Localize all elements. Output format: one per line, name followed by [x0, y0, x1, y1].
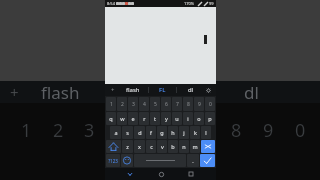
staticText: 7: [176, 101, 179, 108]
staticText: 2: [121, 101, 124, 108]
staticText: n: [182, 143, 186, 150]
staticText: g: [160, 129, 164, 136]
button[interactable]: v: [157, 140, 167, 153]
staticText: .: [192, 157, 194, 164]
button[interactable]: Home: [155, 168, 167, 180]
button[interactable]: .: [187, 154, 199, 167]
staticText: q: [109, 115, 113, 122]
staticText: +: [111, 86, 115, 94]
button[interactable]: b: [168, 140, 178, 153]
button[interactable]: s: [122, 126, 133, 139]
staticText: 1: [110, 101, 113, 108]
staticText: +: [10, 82, 19, 102]
button[interactable]: n: [179, 140, 189, 153]
button[interactable]: 1: [106, 97, 116, 111]
button[interactable]: 9: [194, 97, 204, 111]
button[interactable]: 5: [150, 97, 160, 111]
button[interactable]: l: [201, 126, 211, 139]
staticText: e: [131, 115, 135, 122]
staticText: 170%: [184, 1, 195, 6]
button[interactable]: g: [157, 126, 167, 139]
staticText: x: [138, 143, 141, 150]
staticText: flash: [41, 81, 80, 103]
button[interactable]: Space: [134, 154, 186, 167]
button[interactable]: h: [168, 126, 178, 139]
staticText: 5: [154, 101, 157, 108]
staticText: 6: [165, 101, 168, 108]
staticText: 99: [209, 1, 214, 6]
staticText: 3: [84, 118, 95, 143]
staticText: o: [197, 115, 201, 122]
staticText: 8:54: [107, 1, 115, 6]
button[interactable]: 7: [172, 97, 182, 111]
staticText: dl: [244, 81, 259, 103]
button[interactable]: 4: [139, 97, 149, 111]
staticText: 0: [295, 118, 306, 143]
button[interactable]: x: [134, 140, 145, 153]
staticText: flash: [126, 86, 140, 94]
button[interactable]: Emoji: [121, 154, 133, 167]
staticText: k: [194, 129, 197, 136]
staticText: ?123: [108, 158, 118, 164]
staticText: m: [192, 143, 198, 150]
staticText: d: [138, 129, 142, 136]
button[interactable]: m: [190, 140, 200, 153]
button[interactable]: dl: [177, 84, 204, 96]
button[interactable]: Backspace: [201, 140, 215, 153]
button[interactable]: d: [134, 126, 145, 139]
button[interactable]: i: [183, 112, 193, 125]
button[interactable]: Recents: [185, 168, 197, 180]
button[interactable]: flash: [117, 84, 148, 96]
button[interactable]: Shift: [106, 140, 121, 153]
button[interactable]: k: [190, 126, 200, 139]
staticText: 3: [132, 101, 135, 108]
staticText: c: [150, 143, 153, 150]
button[interactable]: ?123: [106, 154, 120, 167]
staticText: u: [175, 115, 179, 122]
button[interactable]: Add to dictionary: [108, 84, 117, 96]
button[interactable]: 6: [161, 97, 171, 111]
staticText: j: [183, 129, 185, 136]
button[interactable]: w: [117, 112, 127, 125]
staticText: 2: [53, 118, 64, 143]
button[interactable]: y: [161, 112, 171, 125]
staticText: y: [165, 115, 168, 122]
button[interactable]: 8: [183, 97, 193, 111]
button[interactable]: p: [205, 112, 215, 125]
staticText: b: [171, 143, 175, 150]
button[interactable]: Enter: [200, 154, 215, 167]
staticText: a: [114, 129, 118, 136]
staticText: 9: [198, 101, 201, 108]
staticText: z: [126, 143, 129, 150]
button[interactable]: f: [146, 126, 156, 139]
staticText: dl: [188, 86, 194, 94]
staticText: r: [143, 115, 146, 122]
button[interactable]: Keyboard settings: [204, 84, 213, 96]
button[interactable]: FL: [149, 84, 176, 96]
button[interactable]: t: [150, 112, 160, 125]
staticText: f: [150, 129, 152, 136]
button[interactable]: z: [122, 140, 133, 153]
button[interactable]: j: [179, 126, 189, 139]
staticText: s: [126, 129, 129, 136]
button[interactable]: 2: [117, 97, 127, 111]
button[interactable]: u: [172, 112, 182, 125]
button[interactable]: c: [146, 140, 156, 153]
staticText: v: [161, 143, 164, 150]
button[interactable]: Back: [124, 168, 136, 180]
staticText: p: [208, 115, 212, 122]
staticText: FL: [159, 86, 166, 94]
button[interactable]: q: [106, 112, 116, 125]
button[interactable]: e: [128, 112, 138, 125]
staticText: 1: [21, 118, 32, 143]
button[interactable]: r: [139, 112, 149, 125]
staticText: 8: [231, 118, 242, 143]
staticText: i: [187, 115, 189, 122]
staticText: l: [205, 129, 207, 136]
button[interactable]: a: [110, 126, 121, 139]
button[interactable]: 0: [205, 97, 215, 111]
staticText: w: [120, 115, 125, 122]
button[interactable]: o: [194, 112, 204, 125]
staticText: t: [154, 115, 156, 122]
button[interactable]: 3: [128, 97, 138, 111]
